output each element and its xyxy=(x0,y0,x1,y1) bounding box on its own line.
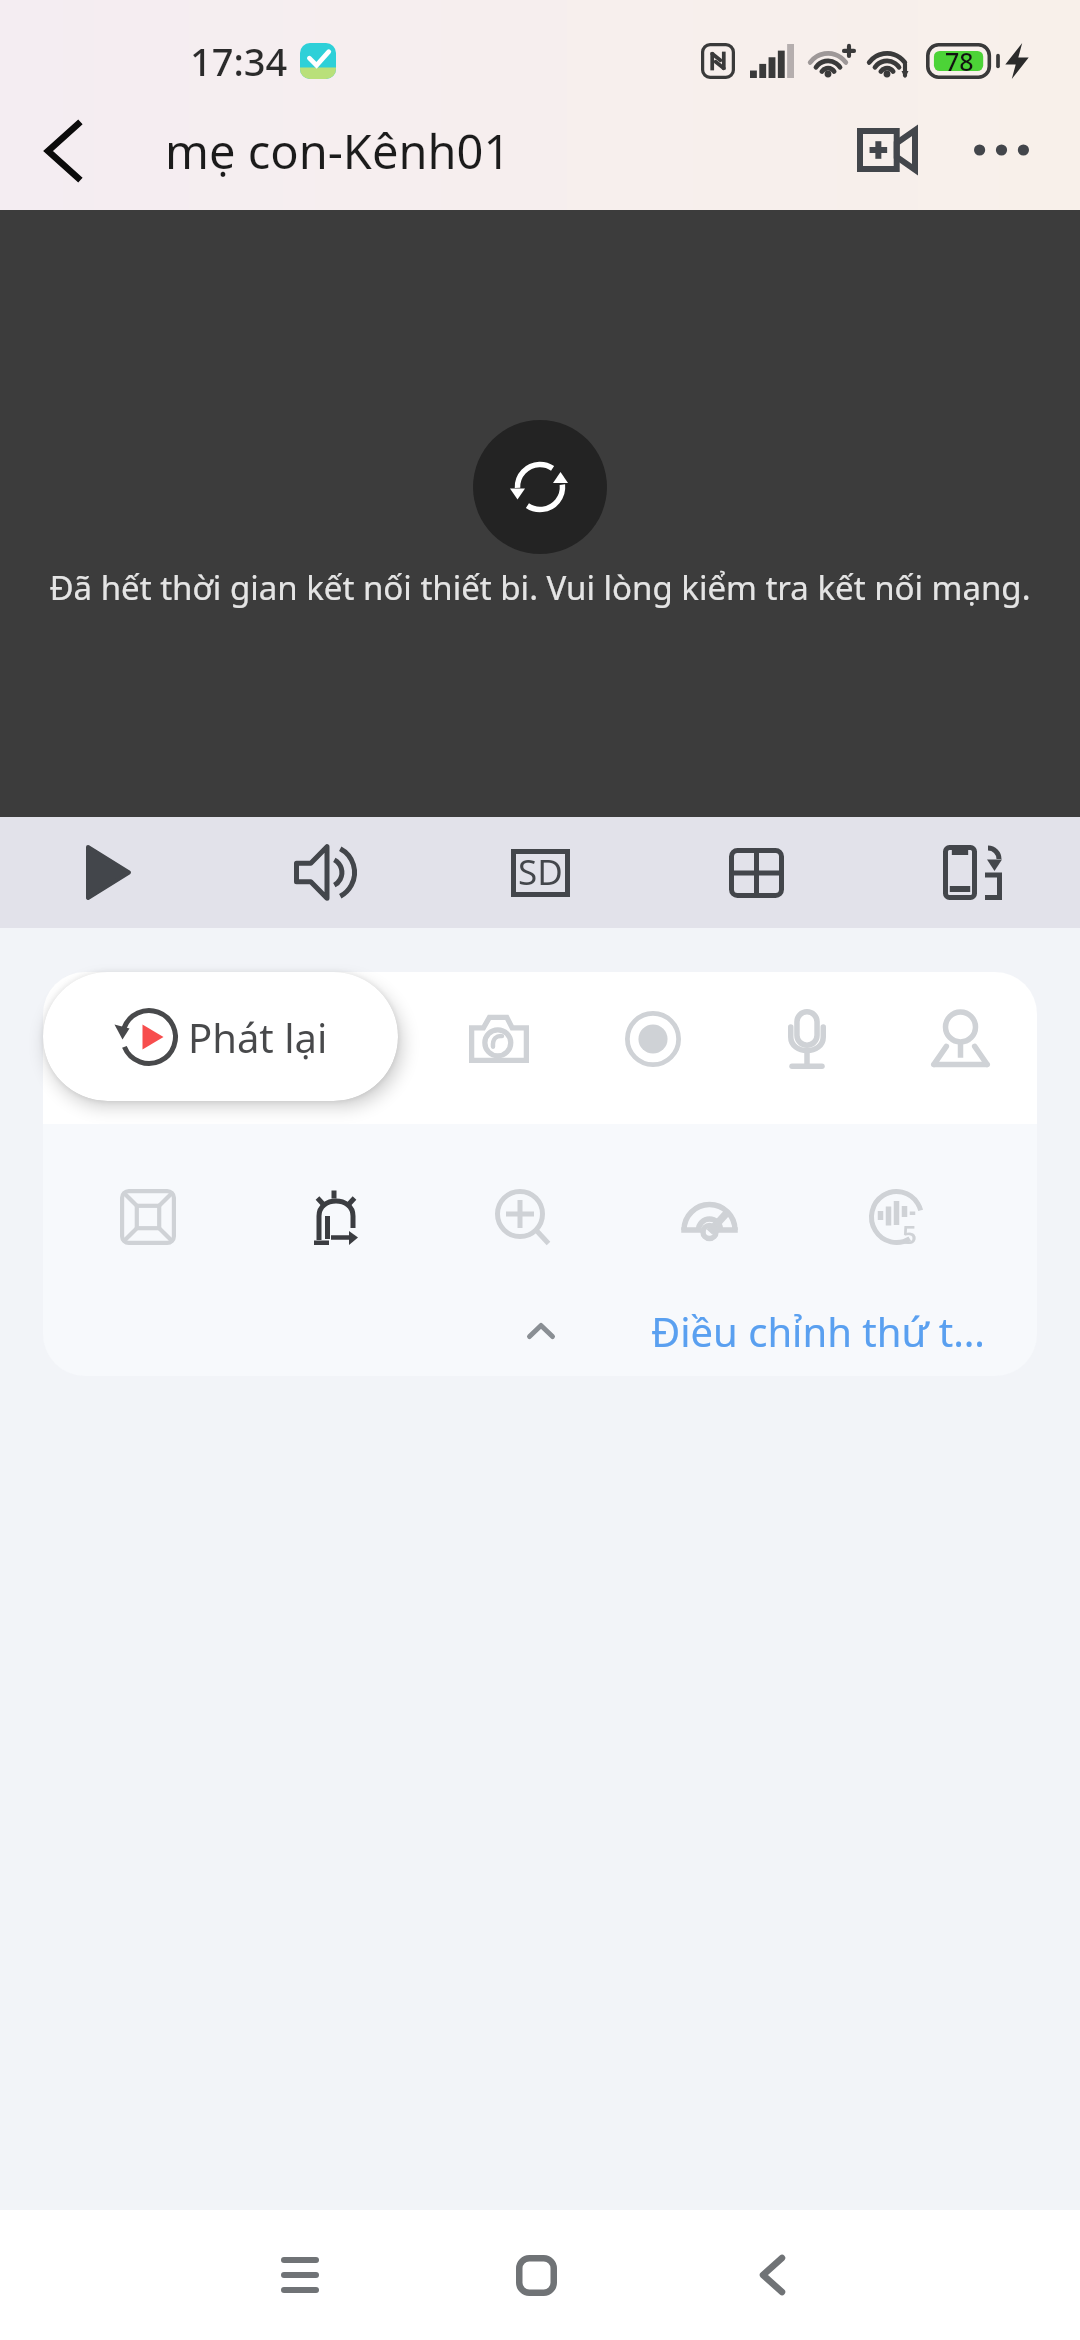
staticText: 78 xyxy=(945,44,974,78)
staticText: mẹ con-Kênh01 xyxy=(165,119,511,183)
staticText: 17:34 xyxy=(190,35,288,87)
button[interactable]: Sound xyxy=(216,817,432,928)
button[interactable]: Back xyxy=(0,100,126,210)
button[interactable]: Split view xyxy=(648,817,864,928)
button[interactable]: Collapse xyxy=(503,1286,579,1376)
button[interactable]: Picture adjustment xyxy=(54,1124,242,1310)
button[interactable]: Siren alarm xyxy=(242,1124,429,1310)
button[interactable]: Add camera xyxy=(832,95,942,205)
staticText: Phát lại xyxy=(188,1010,328,1064)
button[interactable]: More options xyxy=(942,95,1060,205)
staticText: Điều chỉnh thứ t… xyxy=(651,1304,985,1358)
button[interactable]: Microphone xyxy=(730,972,884,1115)
button[interactable]: Back xyxy=(654,2210,890,2340)
button[interactable]: Retry xyxy=(473,420,607,554)
button[interactable]: Cast to device xyxy=(864,817,1080,928)
button[interactable]: Snapshot xyxy=(422,972,576,1115)
button[interactable]: Phát lại xyxy=(43,972,398,1101)
button[interactable]: Home xyxy=(418,2210,654,2340)
button[interactable]: Digital zoom xyxy=(429,1124,616,1310)
staticText: Đã hết thời gian kết nối thiết bi. Vui l… xyxy=(0,565,1080,610)
staticText: SD xyxy=(518,848,563,896)
staticText: 5 xyxy=(902,1216,917,1251)
button[interactable]: Pan tilt zoom xyxy=(884,972,1037,1115)
button[interactable]: Điều chỉnh thứ t… xyxy=(651,1286,985,1376)
button[interactable]: Play xyxy=(0,817,216,928)
button[interactable]: Volume level 5 xyxy=(803,1124,990,1310)
button[interactable]: Recent apps xyxy=(182,2210,418,2340)
button[interactable]: Record xyxy=(576,972,730,1115)
button[interactable]: SD quality xyxy=(432,817,648,928)
button[interactable]: Bitrate xyxy=(616,1124,803,1310)
